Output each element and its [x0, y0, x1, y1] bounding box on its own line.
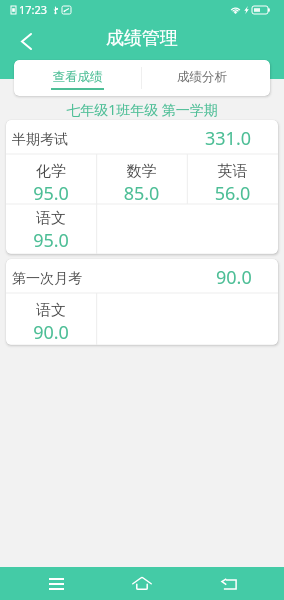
staticText: 七年级1班年级 第一学期 [0, 100, 284, 119]
staticText: 56.0 [187, 181, 278, 206]
staticText: 语文 [6, 209, 96, 228]
button[interactable]: Home [117, 567, 167, 600]
staticText: 95.0 [6, 181, 96, 206]
button[interactable]: Menu [31, 567, 81, 600]
staticText: 331.0 [205, 126, 252, 151]
staticText: 90.0 [216, 265, 252, 290]
staticText: 第一次月考 [12, 270, 82, 288]
staticText: 85.0 [96, 181, 187, 206]
button[interactable]: 成绩分析 [142, 60, 270, 96]
staticText: 数学 [96, 162, 187, 181]
staticText: 英语 [187, 162, 278, 181]
staticText: 90.0 [6, 320, 96, 345]
staticText: 成绩分析 [138, 69, 266, 85]
staticText: 成绩管理 [0, 27, 284, 50]
button[interactable]: Recent [204, 567, 254, 600]
staticText: 半期考试 [12, 131, 68, 149]
button[interactable]: Back [12, 27, 40, 55]
button[interactable]: 查看成绩 [14, 60, 141, 96]
staticText: 语文 [6, 301, 96, 320]
staticText: 查看成绩 [14, 69, 141, 85]
staticText: 17:23 [19, 2, 48, 17]
staticText: 95.0 [6, 228, 96, 253]
staticText: 化学 [6, 162, 96, 181]
